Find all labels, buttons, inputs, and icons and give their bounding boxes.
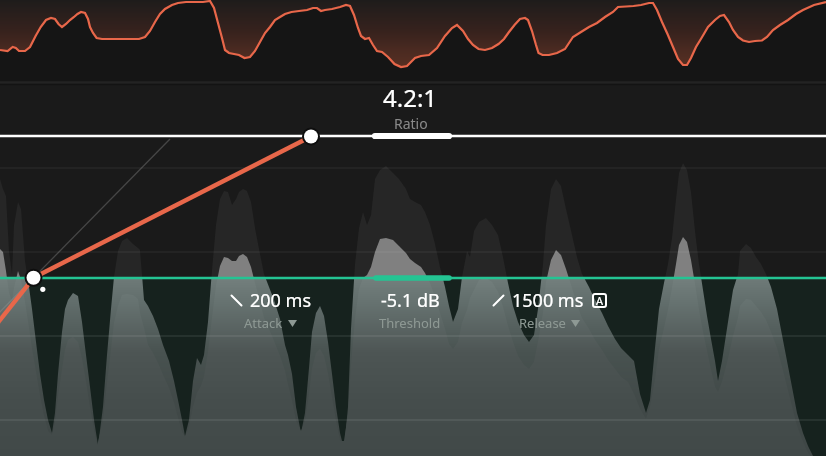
staticText: 4.2:1 <box>383 81 438 114</box>
button[interactable]: 200 ms <box>185 288 355 332</box>
button[interactable]: Auto release <box>592 293 607 308</box>
staticText: A <box>596 293 604 308</box>
staticText: -5.1 dB <box>381 288 440 313</box>
button[interactable]: -5.1 dB <box>325 288 495 332</box>
staticText: Release <box>519 314 566 332</box>
staticText: 1500 ms <box>512 288 584 313</box>
staticText: Ratio <box>394 114 428 129</box>
staticText: 200 ms <box>250 288 312 313</box>
button[interactable]: 4.2:1 <box>340 81 480 129</box>
staticText: Attack <box>244 314 283 332</box>
staticText: Threshold <box>379 314 441 332</box>
button[interactable]: 1500 ms <box>464 288 634 332</box>
